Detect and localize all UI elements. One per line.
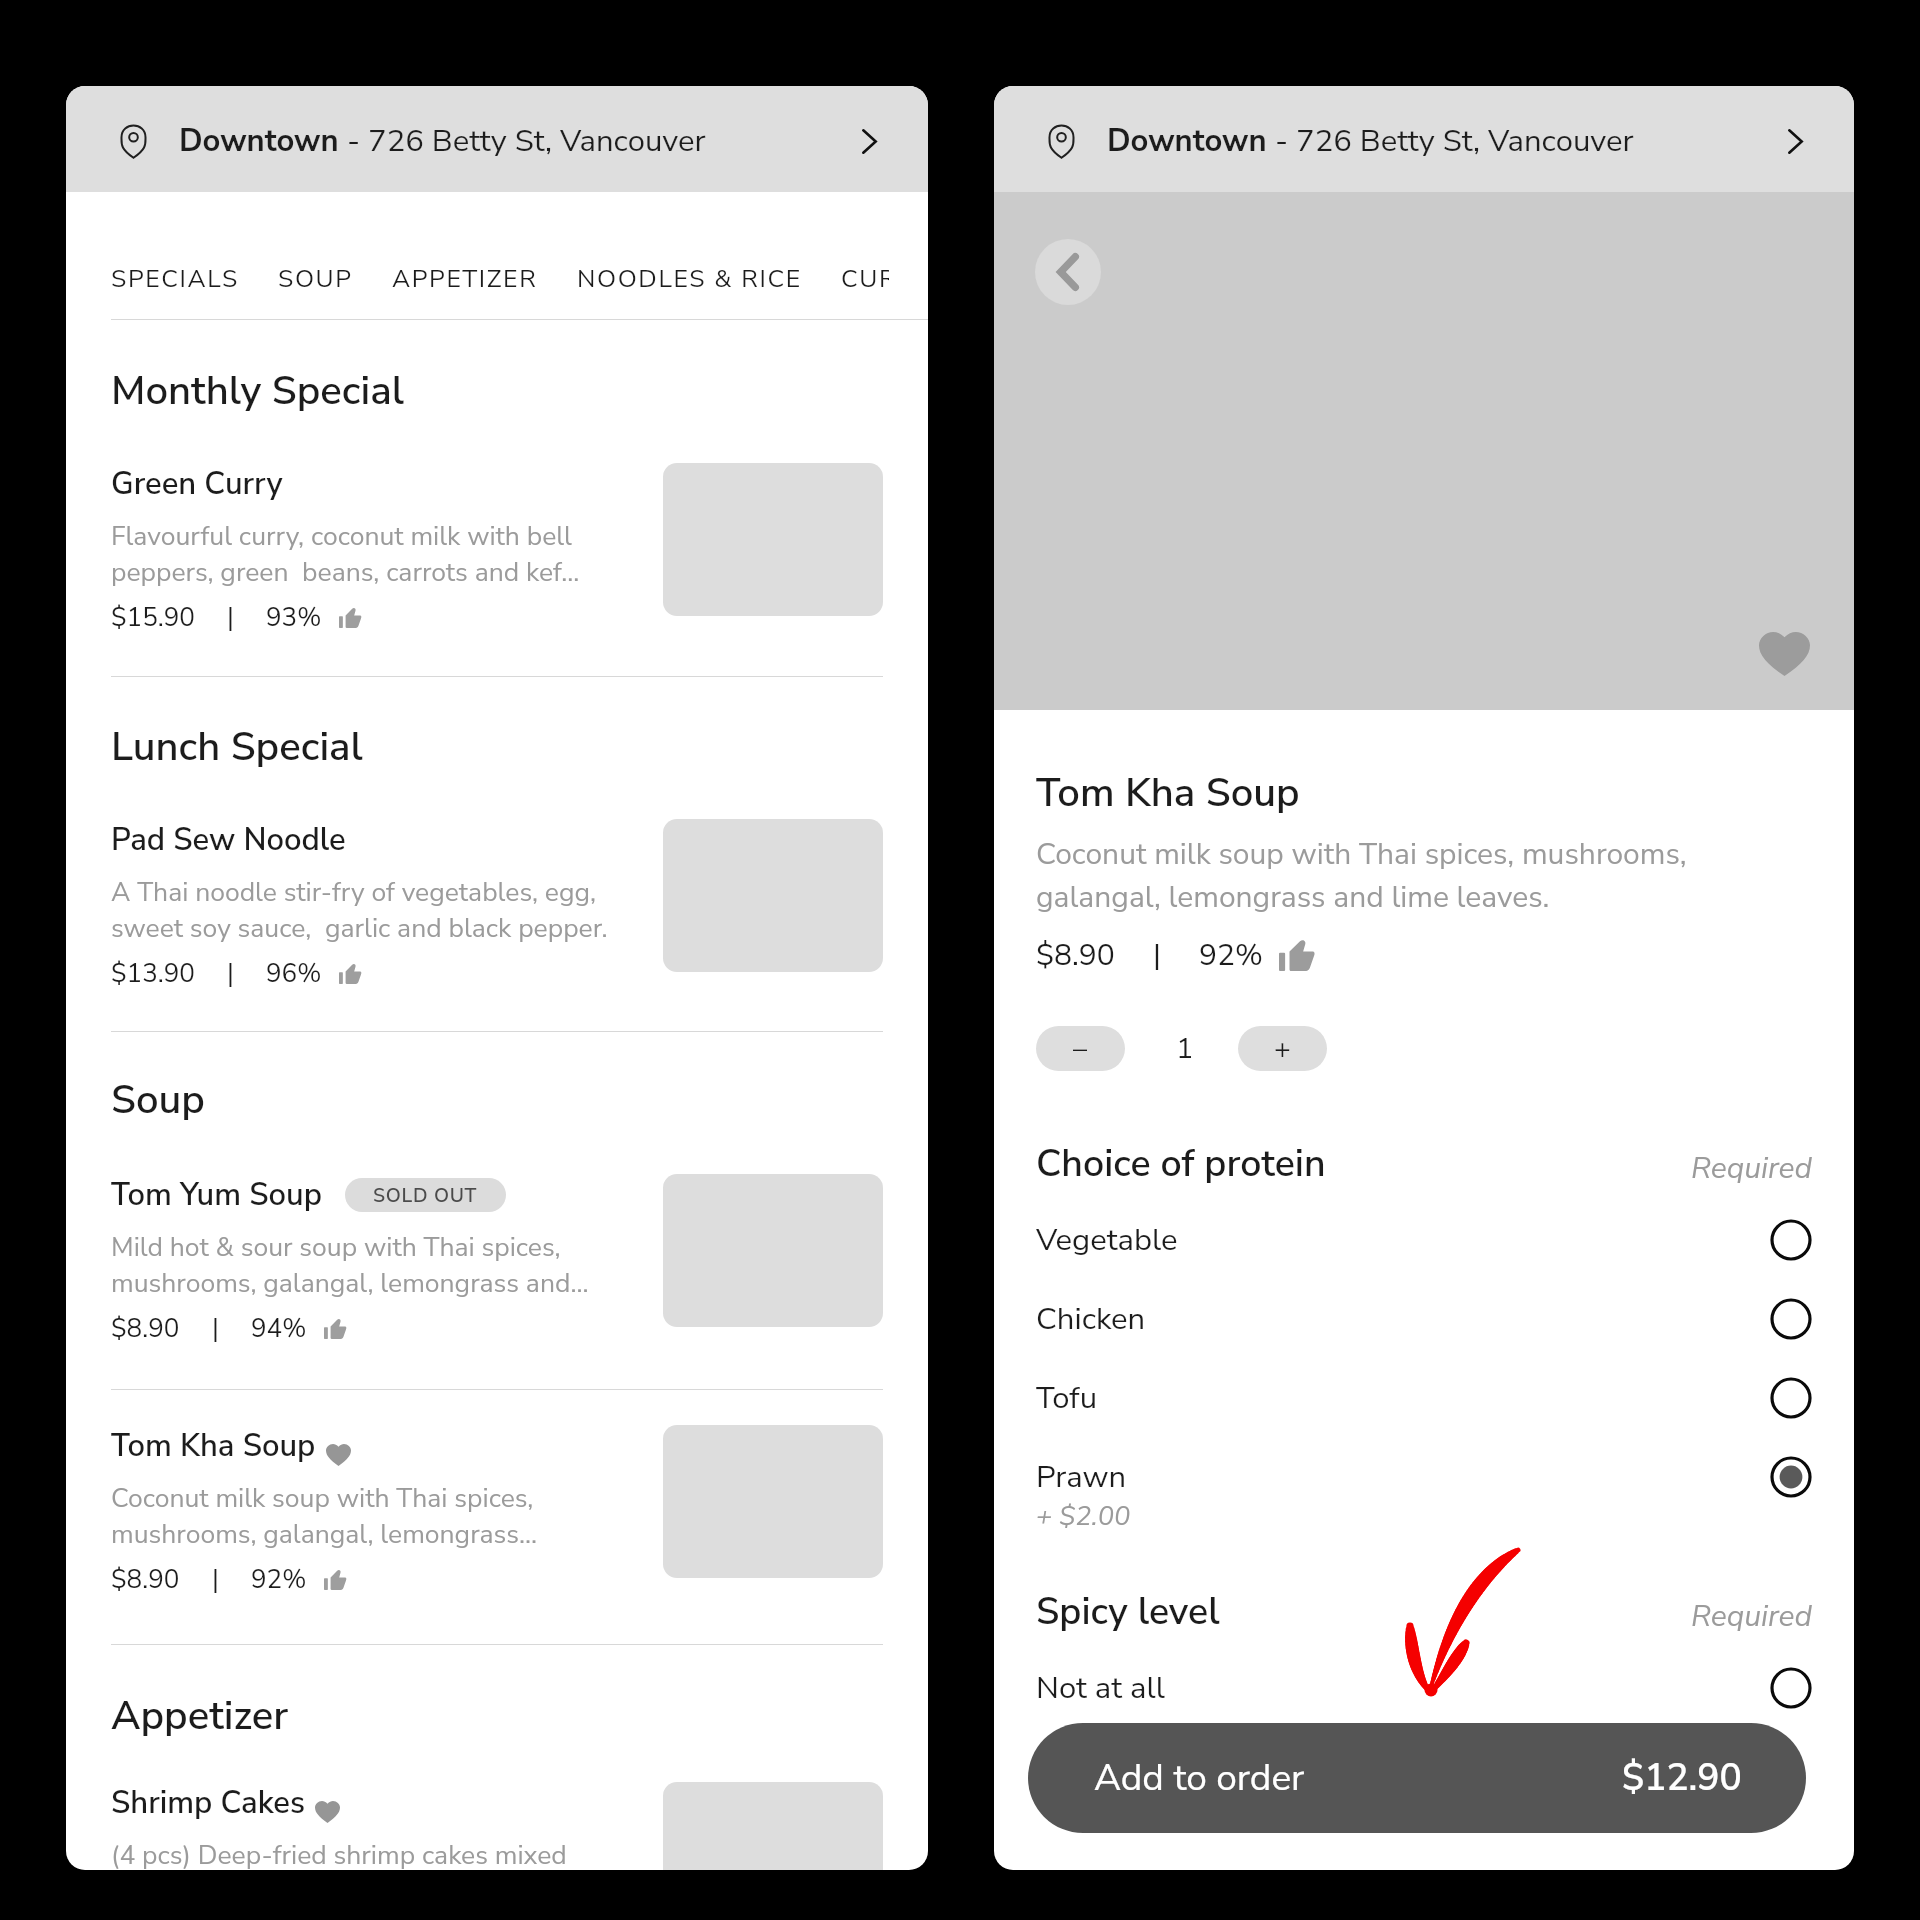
staticText: $15.90 (111, 600, 195, 635)
staticText: (4 pcs) Deep-fried shrimp cakes mixed wi… (111, 1837, 567, 1870)
staticText: $13.90 (111, 956, 195, 991)
staticText: Downtown (179, 120, 339, 162)
staticText: Add to order (1094, 1753, 1305, 1803)
staticText: Coconut milk soup with Thai spices, mush… (111, 1480, 538, 1552)
button[interactable]: SOUP (278, 262, 392, 296)
button[interactable]: Tom Kha Soup (66, 1425, 928, 1597)
button[interactable]: SPECIALS (111, 262, 278, 296)
staticText: + (1274, 1030, 1291, 1068)
staticText: $8.90 (111, 1562, 180, 1597)
staticText: Tom Kha Soup (1036, 766, 1300, 821)
staticText: Pad Sew Noodle (111, 819, 346, 861)
staticText: Tom Kha Soup (111, 1425, 316, 1467)
staticText: SOUP (278, 262, 353, 296)
staticText: NOODLES & RICE (577, 262, 802, 296)
staticText: Green Curry (111, 463, 283, 505)
staticText: Spicy level (1036, 1586, 1220, 1637)
button[interactable]: Green Curry (66, 463, 928, 635)
button[interactable]: Shrimp Cakes (66, 1782, 928, 1870)
staticText: | (212, 1562, 219, 1597)
staticText: Chicken (1036, 1298, 1146, 1340)
staticText: 92% (251, 1562, 307, 1597)
staticText: Vegetable (1036, 1219, 1178, 1261)
staticText: Mild hot & sour soup with Thai spices, m… (111, 1229, 589, 1301)
button[interactable]: CURRY (841, 262, 928, 296)
staticText: APPETIZER (392, 262, 538, 296)
staticText: 96% (266, 956, 322, 991)
staticText: Tom Yum Soup (111, 1174, 322, 1216)
staticText: Not at all (1036, 1667, 1165, 1709)
button[interactable]: APPETIZER (392, 262, 577, 296)
staticText: CURRY (841, 262, 889, 296)
button[interactable]: Not at all (1036, 1666, 1812, 1709)
button[interactable]: Downtown (994, 86, 1854, 192)
button[interactable]: Add to order (1028, 1723, 1806, 1833)
staticText: Choice of protein (1036, 1138, 1326, 1189)
staticText: 92% (1199, 935, 1263, 976)
button[interactable]: NOODLES & RICE (577, 262, 841, 296)
staticText: + $2.00 (1036, 1498, 1131, 1535)
button[interactable]: Back (1035, 239, 1101, 305)
staticText: Soup (111, 1073, 205, 1128)
staticText: Monthly Special (111, 364, 404, 419)
staticText: Flavourful curry, coconut milk with bell… (111, 518, 580, 590)
button[interactable]: Tofu (1036, 1376, 1812, 1419)
button[interactable]: Appetizer (111, 1689, 289, 1744)
button[interactable]: Vegetable (1036, 1218, 1812, 1261)
staticText: | (212, 1311, 219, 1346)
staticText: | (1153, 935, 1161, 976)
button[interactable]: Increase quantity (1238, 1026, 1327, 1071)
staticText: 94% (251, 1311, 307, 1346)
staticText: | (227, 600, 234, 635)
staticText: 93% (266, 600, 322, 635)
button[interactable]: Lunch Special (111, 720, 363, 775)
staticText: Tofu (1036, 1377, 1098, 1419)
button[interactable]: Pad Sew Noodle (66, 819, 928, 991)
button[interactable]: Downtown (66, 86, 928, 192)
staticText: 1 (1176, 1029, 1194, 1069)
button[interactable]: Favourite (1759, 630, 1810, 676)
staticText: - 726 Betty St, Vancouver (1267, 120, 1634, 162)
staticText: Downtown (1107, 120, 1267, 162)
staticText: Appetizer (111, 1689, 289, 1744)
button[interactable]: Tom Yum Soup (66, 1174, 928, 1346)
staticText: | (227, 956, 234, 991)
staticText: Prawn (1036, 1456, 1127, 1498)
staticText: $12.90 (1622, 1753, 1742, 1803)
button[interactable]: Decrease quantity (1036, 1026, 1125, 1071)
staticText: Required (1691, 1596, 1812, 1637)
staticText: Lunch Special (111, 720, 363, 775)
button[interactable]: Chicken (1036, 1297, 1812, 1340)
staticText: Required (1691, 1148, 1812, 1189)
staticText: $8.90 (111, 1311, 180, 1346)
button[interactable]: Soup (111, 1073, 205, 1128)
staticText: SPECIALS (111, 262, 239, 296)
button[interactable]: Monthly Special (111, 364, 404, 419)
staticText: SOLD OUT (373, 1182, 478, 1208)
staticText: Shrimp Cakes (111, 1782, 305, 1824)
staticText: A Thai noodle stir-fry of vegetables, eg… (111, 874, 608, 946)
staticText: - 726 Betty St, Vancouver (339, 120, 706, 162)
button[interactable]: Prawn (1036, 1455, 1812, 1535)
staticText: Coconut milk soup with Thai spices, mush… (1036, 834, 1687, 917)
staticText: $8.90 (1036, 935, 1115, 976)
staticText: – (1073, 1030, 1088, 1068)
